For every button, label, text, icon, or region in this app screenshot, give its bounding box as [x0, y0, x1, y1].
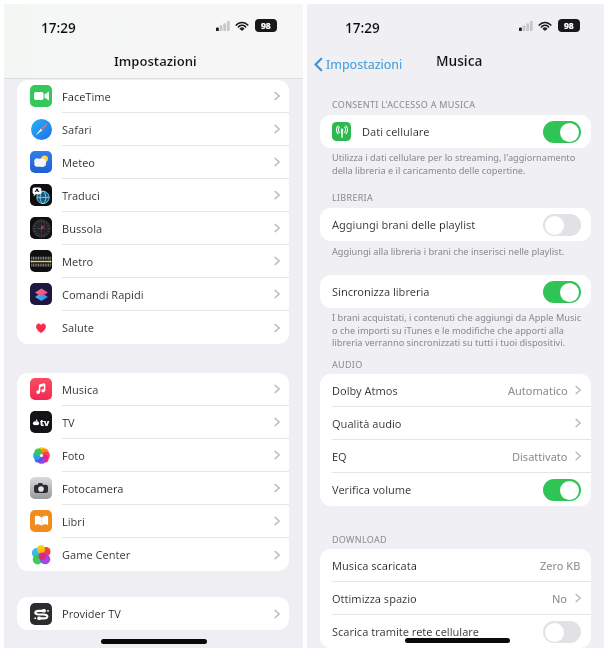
button[interactable]: Provider TV: [17, 597, 289, 630]
staticText: Disattivato: [512, 449, 568, 464]
button[interactable]: Libri: [17, 505, 289, 538]
staticText: No: [552, 591, 568, 606]
button[interactable]: Musica: [17, 373, 289, 406]
staticText: CONSENTI L'ACCESSO A MUSICA: [332, 98, 476, 110]
staticText: Sincronizza libreria: [332, 284, 430, 299]
staticText: Aggiungi brani delle playlist: [332, 217, 476, 232]
staticText: Impostazioni: [326, 56, 403, 73]
staticText: Dati cellulare: [362, 124, 430, 139]
staticText: Fotocamera: [62, 481, 124, 496]
button[interactable]: Metro: [17, 245, 289, 278]
staticText: Libri: [62, 514, 85, 529]
button[interactable]: Safari: [17, 113, 289, 146]
staticText: Musica scaricata: [332, 558, 417, 573]
button[interactable]: Foto: [17, 439, 289, 472]
staticText: Ottimizza spazio: [332, 591, 417, 606]
button[interactable]: FaceTime: [17, 80, 289, 113]
staticText: AUDIO: [332, 358, 363, 370]
staticText: Salute: [62, 320, 95, 335]
staticText: DOWNLOAD: [332, 533, 387, 545]
button[interactable]: Scarica tramite rete cellulare: [320, 615, 591, 648]
staticText: Utilizza i dati cellulare per lo streami…: [332, 151, 576, 177]
staticText: 17:29: [41, 19, 76, 37]
staticText: Safari: [62, 122, 92, 137]
staticText: Musica: [62, 382, 99, 397]
button[interactable]: Traduci: [17, 179, 289, 212]
staticText: Bussola: [62, 221, 103, 236]
staticText: LIBRERIA: [332, 191, 374, 203]
staticText: Comandi Rapidi: [62, 287, 144, 302]
button[interactable]: Dolby Atmos: [320, 374, 591, 407]
staticText: Provider TV: [62, 606, 121, 621]
staticText: Qualità audio: [332, 416, 402, 431]
button[interactable]: Ottimizza spazio: [320, 582, 591, 615]
staticText: Musica: [436, 52, 483, 70]
staticText: 98: [564, 20, 574, 32]
staticText: Dolby Atmos: [332, 383, 398, 398]
button[interactable]: Comandi Rapidi: [17, 278, 289, 311]
button[interactable]: Fotocamera: [17, 472, 289, 505]
staticText: Aggiungi alla libreria i brani che inser…: [332, 245, 565, 258]
staticText: Metro: [62, 254, 94, 269]
staticText: TV: [62, 415, 75, 430]
button[interactable]: Sincronizza libreria: [320, 275, 591, 308]
button[interactable]: Salute: [17, 311, 289, 344]
button[interactable]: tv: [17, 406, 289, 439]
staticText: FaceTime: [62, 89, 111, 104]
staticText: Zero KB: [540, 558, 581, 573]
staticText: Foto: [62, 448, 85, 463]
button[interactable]: Impostazioni: [315, 56, 403, 73]
staticText: 17:29: [345, 19, 380, 37]
staticText: Scarica tramite rete cellulare: [332, 624, 479, 639]
button[interactable]: Verifica volume: [320, 473, 591, 506]
staticText: Meteo: [62, 155, 96, 170]
staticText: I brani acquistati, i contenuti che aggi…: [332, 311, 582, 349]
button[interactable]: Aggiungi brani delle playlist: [320, 208, 591, 241]
button[interactable]: Game Center: [17, 538, 289, 571]
staticText: Automatico: [508, 383, 568, 398]
staticText: Verifica volume: [332, 482, 412, 497]
staticText: Game Center: [62, 547, 131, 562]
button[interactable]: Bussola: [17, 212, 289, 245]
staticText: 98: [261, 20, 271, 32]
button[interactable]: Dati cellulare: [320, 115, 591, 148]
staticText: Traduci: [62, 188, 100, 203]
button[interactable]: Meteo: [17, 146, 289, 179]
button[interactable]: Musica scaricata: [320, 549, 591, 582]
staticText: EQ: [332, 449, 347, 464]
staticText: tv: [40, 416, 50, 428]
button[interactable]: EQ: [320, 440, 591, 473]
staticText: Impostazioni: [114, 52, 197, 70]
button[interactable]: Qualità audio: [320, 407, 591, 440]
